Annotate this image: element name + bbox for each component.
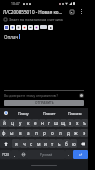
button[interactable]: м: [35, 139, 42, 148]
staticText: у: [19, 120, 22, 126]
button[interactable]: Attach image: [68, 8, 76, 16]
button[interactable]: Shift: [0, 139, 12, 148]
button[interactable]: Attachment option: [4, 25, 9, 30]
staticText: Русский: [40, 153, 53, 157]
staticText: ?123: [2, 153, 9, 157]
button[interactable]: д: [64, 129, 72, 137]
button[interactable]: More options: [78, 8, 85, 15]
staticText: ъ: [83, 120, 86, 126]
staticText: ы: [10, 130, 14, 136]
button[interactable]: о: [48, 129, 56, 137]
button[interactable]: з: [67, 119, 74, 127]
staticText: Плачет: [43, 111, 56, 116]
button[interactable]: у: [16, 119, 24, 127]
button[interactable]: л: [56, 129, 64, 137]
staticText: ч: [23, 141, 26, 147]
staticText: Плачем: [68, 111, 82, 116]
button[interactable]: Attachment option: [22, 25, 27, 30]
staticText: Знает по показаниям счетчика: [9, 17, 63, 22]
button[interactable]: Sender: [79, 93, 84, 98]
button[interactable]: Плачу: [11, 108, 36, 118]
button[interactable]: Backspace: [77, 139, 88, 148]
button[interactable]: ю: [70, 139, 77, 148]
button[interactable]: г: [46, 119, 53, 127]
button[interactable]: Comma: [11, 150, 19, 159]
button[interactable]: Attachment option: [34, 25, 39, 30]
button[interactable]: Русский: [27, 150, 65, 159]
staticText: з: [69, 120, 72, 126]
button[interactable]: й: [0, 119, 8, 127]
button[interactable]: Period: [65, 150, 73, 159]
staticText: д: [67, 130, 70, 136]
staticText: ц: [11, 120, 14, 126]
staticText: 10:47: [11, 1, 20, 6]
staticText: ОТПРАВИТЬ: [35, 101, 54, 105]
button[interactable]: э: [80, 129, 88, 137]
staticText: и: [44, 141, 47, 147]
staticText: х: [76, 120, 79, 126]
button[interactable]: Знает по показаниям счетчика: [4, 16, 88, 22]
staticText: г: [48, 120, 51, 126]
staticText: а: [27, 130, 30, 136]
button[interactable]: с: [28, 139, 35, 148]
button[interactable]: а: [24, 129, 32, 137]
button[interactable]: п: [32, 129, 40, 137]
button[interactable]: Change language: [19, 150, 27, 159]
staticText: т: [51, 141, 54, 147]
button[interactable]: я: [12, 139, 20, 148]
staticText: й: [3, 120, 6, 126]
button[interactable]: н: [39, 119, 46, 127]
button[interactable]: к: [24, 119, 32, 127]
button[interactable]: и: [42, 139, 49, 148]
button[interactable]: ОТПРАВИТЬ: [4, 100, 84, 106]
button[interactable]: б: [63, 139, 70, 148]
staticText: Вы доверяете этому отправителю?: [4, 94, 58, 98]
button[interactable]: Play: [48, 25, 53, 30]
staticText: G: [5, 111, 8, 115]
button[interactable]: Attachment option: [10, 25, 15, 30]
button[interactable]: Attachment option: [28, 25, 33, 30]
staticText: .: [68, 152, 70, 158]
button[interactable]: Enter: [73, 150, 88, 159]
button[interactable]: р: [40, 129, 48, 137]
staticText: в: [19, 130, 22, 136]
button[interactable]: Attachment option: [16, 25, 21, 30]
staticText: е: [34, 120, 37, 126]
button[interactable]: ч: [20, 139, 28, 148]
staticText: ж: [74, 130, 78, 136]
staticText: Оплач: [4, 34, 19, 40]
button[interactable]: ъ: [81, 119, 88, 127]
staticText: ь: [58, 141, 61, 147]
button[interactable]: щ: [60, 119, 67, 127]
staticText: о: [51, 130, 54, 136]
button[interactable]: т: [49, 139, 56, 148]
staticText: ,: [14, 152, 16, 158]
button[interactable]: х: [74, 119, 81, 127]
button[interactable]: ?123: [0, 150, 11, 159]
staticText: ф: [2, 130, 6, 136]
button[interactable]: Attachment: [40, 25, 47, 29]
staticText: м: [37, 141, 41, 147]
staticText: щ: [61, 120, 66, 126]
staticText: с: [30, 141, 33, 147]
button[interactable]: ь: [56, 139, 63, 148]
staticText: б: [65, 141, 68, 147]
button[interactable]: Плачем: [62, 108, 88, 118]
staticText: Л/С200855010 - Новая ко...: [3, 9, 63, 15]
button[interactable]: ж: [72, 129, 80, 137]
staticText: н: [41, 120, 44, 126]
staticText: я: [15, 141, 18, 147]
button[interactable]: Google: [0, 108, 11, 118]
button[interactable]: ы: [8, 129, 16, 137]
staticText: э: [83, 130, 86, 136]
staticText: Плачу: [18, 111, 29, 116]
staticText: п: [35, 130, 38, 136]
button[interactable]: Плачет: [36, 108, 62, 118]
staticText: р: [43, 130, 46, 136]
button[interactable]: ш: [53, 119, 60, 127]
button[interactable]: е: [32, 119, 39, 127]
button[interactable]: в: [16, 129, 24, 137]
button[interactable]: ф: [0, 129, 8, 137]
button[interactable]: ц: [8, 119, 16, 127]
staticText: ю: [72, 141, 76, 147]
